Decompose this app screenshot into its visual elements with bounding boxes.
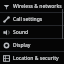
button[interactable]: Display bbox=[0, 39, 64, 51]
staticText: Display bbox=[13, 42, 31, 49]
staticText: Call settings bbox=[13, 16, 43, 23]
staticText: Location & security bbox=[13, 55, 59, 62]
staticText: Sound bbox=[13, 29, 29, 36]
button[interactable]: Call settings bbox=[0, 13, 64, 25]
button[interactable]: Sound bbox=[0, 26, 64, 38]
button[interactable]: Location & security bbox=[0, 52, 64, 64]
staticText: Wireless & networks bbox=[13, 3, 62, 10]
button[interactable]: Wireless & networks bbox=[0, 0, 64, 12]
